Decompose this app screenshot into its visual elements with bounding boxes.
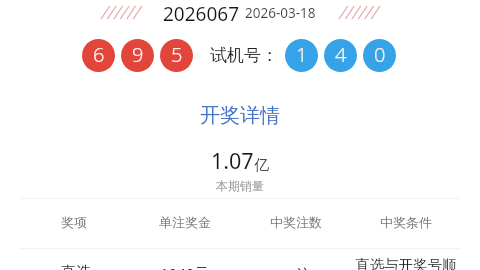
staticText: 中奖条件 — [380, 214, 432, 230]
button[interactable]: 号码 6 — [82, 39, 115, 72]
staticText: 单注奖金 — [159, 214, 211, 230]
button[interactable]: 号码 1 — [285, 39, 318, 72]
staticText: 亿 — [254, 156, 269, 175]
staticText: 2026067 — [163, 1, 240, 25]
button[interactable]: 1.07 — [180, 143, 300, 193]
staticText: 直选与开奖号顺序相同 — [351, 256, 461, 270]
staticText: 中奖注数 — [270, 214, 322, 230]
button[interactable]: 号码 5 — [160, 39, 193, 72]
staticText: 4 — [335, 41, 347, 68]
staticText: 奖项 — [61, 214, 87, 230]
staticText: 试机号： — [210, 45, 278, 66]
staticText: 2026-03-18 — [245, 4, 316, 22]
button[interactable]: 2026067 — [160, 0, 318, 24]
staticText: 1 — [296, 41, 308, 68]
staticText: 0 — [374, 41, 386, 68]
staticText: 9 — [132, 41, 144, 68]
staticText: 18注 — [279, 264, 312, 270]
staticText: 1.07 — [211, 146, 254, 175]
button[interactable]: 直选 — [19, 255, 461, 270]
staticText: 6 — [93, 41, 105, 68]
staticText: 5 — [171, 41, 183, 68]
button[interactable]: 号码 9 — [121, 39, 154, 72]
staticText: 1040元 — [160, 263, 210, 270]
staticText: 直选 — [61, 263, 91, 270]
staticText: 开奖详情 — [200, 103, 280, 128]
button[interactable]: 号码 4 — [324, 39, 357, 72]
button[interactable]: 号码 0 — [363, 39, 396, 72]
button[interactable]: 开奖详情 — [0, 100, 480, 128]
staticText: 本期销量 — [180, 178, 300, 193]
